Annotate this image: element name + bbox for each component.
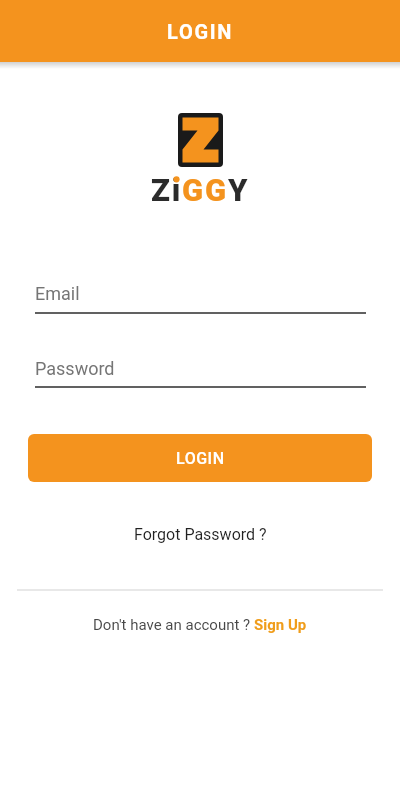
button[interactable]: Don't have an account ? <box>93 616 307 634</box>
staticText: LOGIN <box>167 20 234 43</box>
button[interactable]: Password <box>35 358 366 388</box>
staticText: Sign Up <box>254 616 307 634</box>
staticText: LOGIN <box>176 449 225 468</box>
staticText: ZiGGY <box>151 172 250 208</box>
staticText: Forgot Password ? <box>134 525 267 544</box>
staticText: Email <box>35 283 80 304</box>
staticText: Password <box>35 358 115 379</box>
staticText: Don't have an account ? <box>93 616 254 634</box>
button[interactable]: Forgot Password ? <box>134 525 267 544</box>
button[interactable]: Email <box>35 283 366 314</box>
button[interactable]: LOGIN <box>28 434 372 482</box>
